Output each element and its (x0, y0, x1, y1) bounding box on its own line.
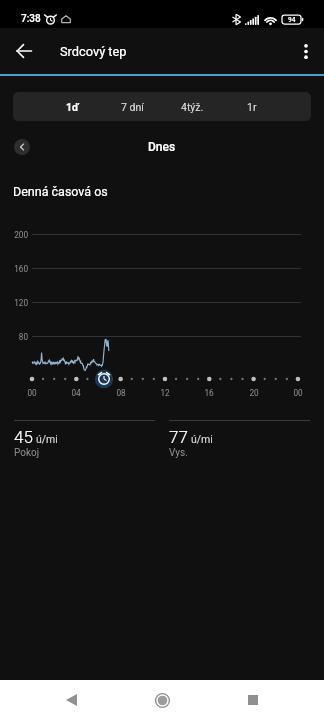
staticText: Dnes (148, 140, 176, 154)
button[interactable]: 4týž. (162, 92, 222, 121)
button[interactable]: Previous day (14, 139, 30, 155)
staticText: 7:38 (21, 13, 41, 25)
staticText: 7 dní (121, 101, 144, 113)
staticText: 45 (14, 427, 33, 447)
button[interactable]: 1ď (42, 92, 102, 121)
staticText: 1ď (66, 101, 79, 113)
staticText: 200 (0, 230, 28, 240)
staticText: 00 (20, 388, 44, 398)
button[interactable]: Home (142, 680, 182, 720)
button[interactable]: Back (51, 680, 91, 720)
staticText: ú/mi (36, 433, 58, 445)
button[interactable]: 7 dní (102, 92, 162, 121)
staticText: 20 (242, 388, 266, 398)
button[interactable]: 1r (222, 92, 282, 121)
staticText: 77 (169, 427, 188, 447)
staticText: 12 (153, 388, 177, 398)
staticText: Denná časová os (13, 184, 108, 199)
staticText: 4týž. (181, 101, 204, 113)
staticText: 1r (247, 101, 257, 113)
staticText: 94 (288, 16, 296, 24)
staticText: 00 (286, 388, 310, 398)
button[interactable]: Back (9, 36, 39, 66)
button[interactable]: More options (292, 37, 320, 65)
staticText: 160 (0, 264, 28, 274)
staticText: 08 (109, 388, 133, 398)
button[interactable]: Recents (233, 680, 273, 720)
staticText: 16 (197, 388, 221, 398)
staticText: 04 (64, 388, 88, 398)
staticText: Pokoj (14, 447, 40, 459)
staticText: Vys. (169, 447, 188, 459)
staticText: 80 (0, 332, 28, 342)
staticText: Srdcový tep (60, 44, 127, 59)
staticText: 120 (0, 298, 28, 308)
staticText: ú/mi (191, 433, 213, 445)
